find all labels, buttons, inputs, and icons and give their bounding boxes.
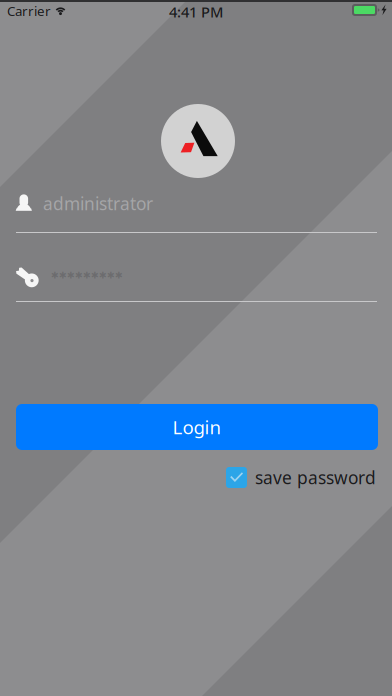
staticText: Login	[172, 415, 221, 439]
button[interactable]: Login	[16, 404, 378, 450]
staticText: save password	[255, 466, 376, 489]
button[interactable]: save password	[226, 466, 376, 489]
staticText: Carrier	[7, 2, 51, 20]
staticText: ✱✱✱✱✱✱✱✱✱	[51, 270, 123, 281]
staticText: administrator	[43, 192, 153, 215]
staticText: 4:41 PM	[169, 2, 223, 21]
